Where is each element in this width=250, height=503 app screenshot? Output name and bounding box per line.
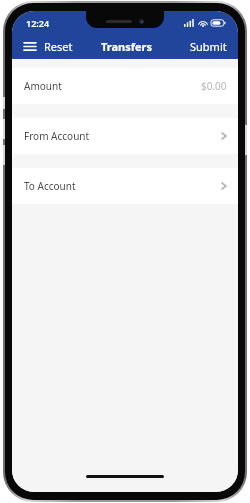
staticText: Amount — [24, 79, 62, 93]
button[interactable]: From Account — [12, 118, 238, 154]
staticText: 12:24 — [26, 17, 50, 29]
button[interactable]: Reset — [44, 33, 73, 59]
staticText: Reset — [44, 39, 73, 54]
button[interactable]: Menu — [19, 35, 41, 57]
button[interactable]: Submit — [190, 33, 227, 59]
staticText: To Account — [24, 179, 76, 193]
button[interactable]: Amount — [12, 68, 238, 104]
staticText: Transfers — [101, 39, 153, 54]
staticText: $0.00 — [201, 79, 227, 93]
button[interactable]: To Account — [12, 168, 238, 204]
staticText: From Account — [24, 129, 90, 143]
staticText: Submit — [190, 39, 227, 54]
